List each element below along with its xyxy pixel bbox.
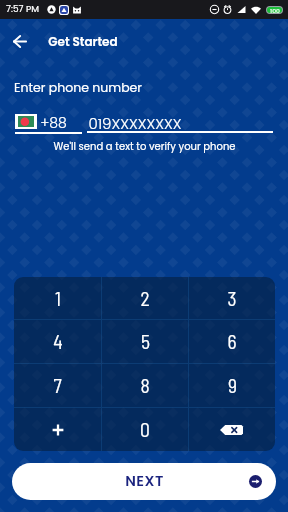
button[interactable]: 8 <box>102 364 188 407</box>
staticText: Enter phone number <box>14 79 142 96</box>
staticText: +88 <box>40 113 67 133</box>
button[interactable]: Select country code <box>15 114 37 129</box>
staticText: 6 <box>227 329 237 352</box>
staticText: 7:57 PM <box>6 3 39 16</box>
button[interactable] <box>14 408 101 451</box>
staticText: NEXT <box>125 471 164 491</box>
staticText: 7 <box>53 373 62 396</box>
staticText: 0 <box>140 417 150 440</box>
button[interactable]: NEXT <box>12 463 276 500</box>
button[interactable]: 6 <box>189 320 275 363</box>
button[interactable]: Backspace <box>189 408 275 451</box>
other: Backspace <box>220 425 243 435</box>
staticText: 3 <box>227 286 237 309</box>
button[interactable]: Back <box>0 19 40 64</box>
staticText: Get Started <box>48 33 118 50</box>
button[interactable]: 0 <box>102 408 188 451</box>
staticText: 019XXXXXXXX <box>88 113 182 134</box>
staticText: 5 <box>141 329 150 352</box>
button[interactable]: 1 <box>14 277 101 319</box>
button[interactable]: 9 <box>189 364 275 407</box>
button[interactable]: 2 <box>102 277 188 319</box>
staticText: 8 <box>140 373 150 396</box>
staticText: 100 <box>270 7 280 13</box>
button[interactable]: 4 <box>14 320 101 363</box>
staticText: 9 <box>228 373 237 396</box>
staticText: We'll send a text to verify your phone <box>53 139 236 153</box>
button[interactable]: 5 <box>102 320 188 363</box>
staticText: 1 <box>55 286 61 309</box>
staticText: 2 <box>140 286 150 309</box>
button[interactable]: 7 <box>14 364 101 407</box>
button[interactable]: 3 <box>189 277 275 319</box>
staticText: 4 <box>53 329 63 352</box>
